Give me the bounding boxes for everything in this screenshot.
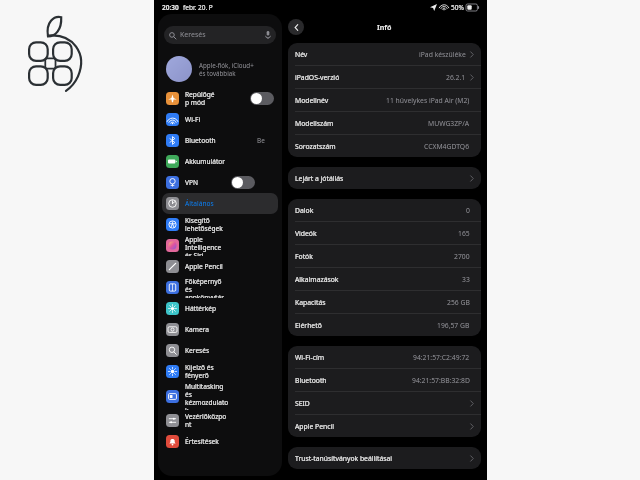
staticText: Akkumulátor (185, 157, 226, 166)
button[interactable]: Bluetooth (288, 369, 481, 391)
button[interactable]: Back (288, 19, 304, 35)
staticText: Lejárt a jótállás (295, 174, 344, 183)
button[interactable]: Vezérlőközpont (162, 410, 278, 431)
button[interactable]: Repülőgép mód (162, 88, 278, 109)
staticText: Videók (295, 229, 317, 238)
staticText: febr. 20. P (183, 3, 213, 12)
staticText: 94:21:57:C2:49:72 (413, 353, 470, 362)
staticText: Infó (377, 22, 392, 32)
staticText: Értesítések (185, 437, 219, 446)
staticText: iPad készüléke (419, 50, 466, 59)
staticText: Bluetooth (295, 376, 327, 385)
button[interactable]: Keresés (162, 340, 278, 361)
button[interactable]: Apple Intelligence és Siri (162, 235, 278, 256)
button[interactable]: Értesítések (162, 431, 278, 452)
staticText: iPadOS-verzió (295, 73, 340, 82)
button[interactable]: Kapacitás (288, 291, 481, 313)
button[interactable]: Modellnév (288, 89, 481, 111)
button[interactable]: iPadOS-verzió (288, 66, 481, 88)
staticText: és továbbiak (199, 69, 236, 77)
staticText: Modellnév (295, 96, 329, 105)
button[interactable]: Trust-tanúsítványok beállításai (288, 447, 481, 469)
button[interactable]: Keresés (164, 26, 276, 44)
staticText: SEID (295, 399, 310, 408)
staticText: Multitasking és kézmozdulatok (185, 382, 229, 410)
staticText: 11 hüvelykes iPad Air (M2) (386, 96, 470, 105)
button[interactable]: Apple Pencil (288, 415, 481, 437)
staticText: Trust-tanúsítványok beállításai (295, 454, 393, 463)
button[interactable]: Kamera (162, 319, 278, 340)
button[interactable]: Apple Pencil (162, 256, 278, 277)
button[interactable]: Multitasking és kézmozdulatok (162, 382, 278, 410)
staticText: 2700 (454, 252, 470, 261)
staticText: Kijelző és fényerő (185, 363, 229, 380)
staticText: Fotók (295, 252, 313, 261)
staticText: Modellszám (295, 119, 334, 128)
button[interactable]: Általános (162, 193, 278, 214)
staticText: Apple Pencil (295, 422, 334, 431)
staticText: CCXM4GDTQ6 (424, 142, 470, 151)
staticText: Dalok (295, 206, 314, 215)
staticText: Apple Pencil (185, 262, 223, 271)
button[interactable]: Név (288, 43, 481, 65)
staticText: Általános (185, 199, 214, 208)
button[interactable]: Apple-fiók, iCloud+ (158, 52, 282, 86)
staticText: Keresés (185, 346, 210, 355)
button[interactable]: VPN (162, 172, 278, 193)
staticText: Kapacitás (295, 298, 326, 307)
staticText: Kisegítő lehetőségek (185, 216, 229, 233)
button[interactable]: Háttérkép (162, 298, 278, 319)
staticText: 94:21:57:BB:32:8D (412, 376, 470, 385)
staticText: Wi-Fi-cím (295, 353, 325, 362)
staticText: Elérhető (295, 321, 322, 330)
button[interactable]: Kisegítő lehetőségek (162, 214, 278, 235)
staticText: Be (257, 136, 265, 145)
button[interactable]: Főképernyő és appkönyvtár (162, 277, 278, 298)
staticText: Név (295, 50, 308, 59)
staticText: Sorozatszám (295, 142, 336, 151)
staticText: Apple Intelligence és Siri (185, 235, 229, 256)
staticText: 256 GB (447, 298, 470, 307)
button[interactable]: Alkalmazások (288, 268, 481, 290)
button[interactable]: Dalok (288, 199, 481, 221)
button[interactable]: Modellszám (288, 112, 481, 134)
staticText: Alkalmazások (295, 275, 339, 284)
button[interactable]: Elérhető (288, 314, 481, 336)
staticText: 20:30 (162, 3, 179, 12)
button[interactable]: Kijelző és fényerő (162, 361, 278, 382)
button[interactable]: Toggle (250, 92, 274, 105)
staticText: Apple-fiók, iCloud+ (199, 61, 254, 69)
button[interactable]: SEID (288, 392, 481, 414)
staticText: 0 (466, 206, 470, 215)
staticText: 165 (458, 229, 470, 238)
button[interactable]: Wi-Fi (162, 109, 278, 130)
button[interactable]: Wi-Fi-cím (288, 346, 481, 368)
staticText: 50% (451, 3, 464, 12)
button[interactable]: Akkumulátor (162, 151, 278, 172)
staticText: Főképernyő és appkönyvtár (185, 277, 229, 298)
button[interactable]: Videók (288, 222, 481, 244)
staticText: 196,57 GB (437, 321, 470, 330)
staticText: VPN (185, 178, 198, 187)
staticText: MUWG3ZP/A (428, 119, 470, 128)
button[interactable]: Sorozatszám (288, 135, 481, 157)
staticText: Bluetooth (185, 136, 216, 145)
button[interactable]: Fotók (288, 245, 481, 267)
staticText: Keresés (180, 30, 206, 40)
staticText: Repülőgép mód (185, 90, 217, 107)
staticText: Wi-Fi (185, 115, 201, 124)
button[interactable]: Toggle (231, 176, 255, 189)
staticText: Háttérkép (185, 304, 217, 313)
staticText: 33 (462, 275, 470, 284)
button[interactable]: Bluetooth (162, 130, 278, 151)
button[interactable]: Lejárt a jótállás (288, 167, 481, 189)
staticText: Kamera (185, 325, 209, 334)
staticText: Vezérlőközpont (185, 412, 229, 429)
staticText: 26.2.1 (446, 73, 466, 82)
